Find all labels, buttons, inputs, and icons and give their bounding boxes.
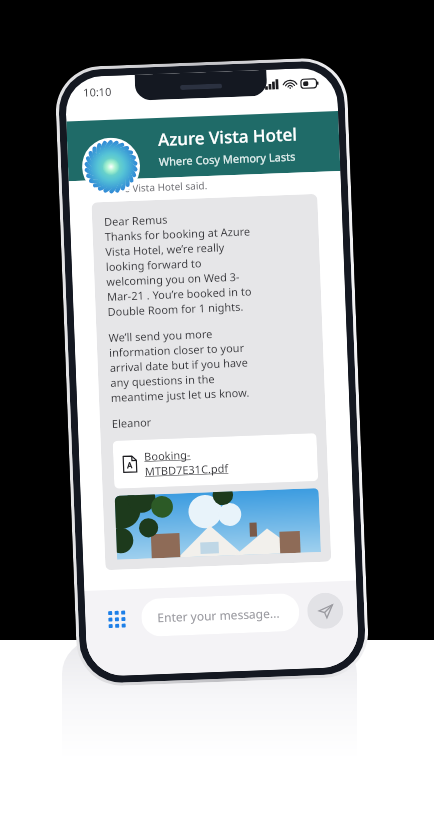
button[interactable]: Dear Remus bbox=[91, 194, 331, 570]
staticText: any questions in the bbox=[110, 371, 215, 390]
staticText: Enter your message... bbox=[157, 605, 281, 625]
staticText: We’ll send you more bbox=[108, 326, 213, 345]
staticText: Azure Vista Hotel said. bbox=[103, 178, 208, 196]
other: Azure Vista Hotel logo bbox=[83, 139, 139, 195]
button[interactable]: Booking- bbox=[113, 433, 318, 489]
staticText: MTBD7E31C.pdf bbox=[144, 460, 229, 479]
staticText: meantime just let us know. bbox=[111, 385, 250, 405]
staticText: Thanks for booking at Azure bbox=[104, 223, 251, 244]
button[interactable]: Azure Vista Hotel bbox=[66, 111, 340, 181]
staticText: arrival date but if you have bbox=[109, 355, 249, 375]
staticText: Where Cosy Memory Lasts bbox=[159, 149, 296, 169]
staticText: Mar-21 . You’re booked in to bbox=[107, 283, 252, 304]
staticText: 10:10 bbox=[83, 84, 112, 100]
button[interactable]: More options bbox=[99, 601, 134, 636]
staticText: Vista Hotel, we’re really bbox=[105, 239, 225, 259]
staticText: Dear Remus bbox=[104, 212, 168, 229]
button[interactable]: Send bbox=[307, 592, 344, 630]
staticText: Booking- bbox=[144, 447, 191, 464]
staticText: Double Room for 1 nights. bbox=[107, 299, 244, 319]
staticText: Eleanor bbox=[112, 414, 152, 431]
staticText: looking forward to bbox=[106, 255, 202, 274]
staticText: information closer to your bbox=[109, 340, 244, 360]
button[interactable]: Hotel photo bbox=[115, 488, 321, 560]
button[interactable]: Enter your message... bbox=[141, 593, 300, 637]
staticText: Azure Vista Hotel bbox=[158, 123, 297, 151]
staticText: welcoming you on Wed 3- bbox=[106, 269, 241, 289]
